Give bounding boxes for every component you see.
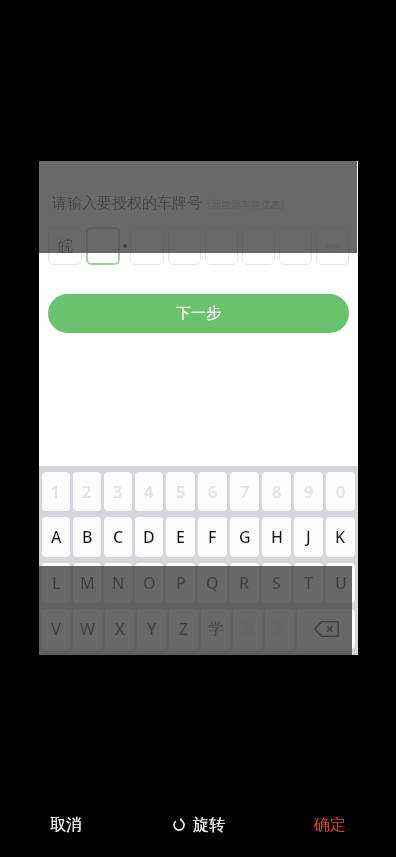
- staticText: D: [143, 526, 155, 548]
- button[interactable]: 皖: [48, 227, 82, 265]
- staticText: 8: [272, 481, 282, 503]
- button[interactable]: [205, 227, 238, 265]
- staticText: R: [239, 572, 250, 594]
- button[interactable]: 取消: [0, 793, 132, 857]
- staticText: 0: [336, 481, 346, 503]
- button[interactable]: O: [135, 563, 163, 603]
- button[interactable]: Z: [169, 609, 198, 649]
- staticText: K: [335, 526, 346, 548]
- staticText: L: [52, 572, 61, 594]
- button[interactable]: N: [104, 563, 132, 603]
- button[interactable]: U: [326, 563, 355, 603]
- staticText: (新能源车牌优惠): [208, 197, 284, 211]
- staticText: 取消: [50, 815, 82, 835]
- button[interactable]: [86, 227, 120, 265]
- button[interactable]: J: [294, 517, 323, 557]
- staticText: Y: [147, 618, 157, 640]
- button[interactable]: [168, 227, 201, 265]
- button[interactable]: 2: [73, 472, 101, 511]
- staticText: J: [306, 526, 311, 548]
- button[interactable]: 8: [262, 472, 291, 511]
- staticText: 6: [208, 481, 218, 503]
- button[interactable]: 学: [201, 609, 230, 649]
- button[interactable]: 7: [230, 472, 259, 511]
- button[interactable]: 5: [166, 472, 195, 511]
- button[interactable]: M: [73, 563, 101, 603]
- staticText: Z: [179, 618, 189, 640]
- button[interactable]: H: [262, 517, 291, 557]
- button[interactable]: 旋转: [132, 793, 264, 857]
- staticText: N: [112, 572, 125, 594]
- staticText: 皖: [58, 237, 73, 256]
- staticText: A: [51, 526, 62, 548]
- staticText: X: [115, 618, 125, 640]
- staticText: W: [80, 618, 96, 640]
- button[interactable]: 1: [42, 472, 70, 511]
- staticText: 7: [240, 481, 250, 503]
- staticText: 5: [176, 481, 186, 503]
- button[interactable]: Y: [137, 609, 166, 649]
- staticText: 学: [208, 619, 224, 639]
- button[interactable]: [279, 227, 312, 265]
- button[interactable]: 4: [135, 472, 163, 511]
- staticText: B: [82, 526, 93, 548]
- staticText: P: [176, 572, 186, 594]
- staticText: V: [51, 618, 61, 640]
- button[interactable]: G: [230, 517, 259, 557]
- staticText: U: [335, 572, 347, 594]
- button[interactable]: K: [326, 517, 355, 557]
- button[interactable]: L: [42, 563, 70, 603]
- button[interactable]: 新能源: [316, 227, 349, 265]
- button[interactable]: W: [73, 609, 102, 649]
- button[interactable]: S: [262, 563, 291, 603]
- staticText: 3: [113, 481, 123, 503]
- button[interactable]: B: [73, 517, 101, 557]
- button[interactable]: 确定: [264, 793, 396, 857]
- button[interactable]: T: [294, 563, 323, 603]
- button[interactable]: Delete: [297, 609, 355, 649]
- staticText: 1: [51, 481, 61, 503]
- button[interactable]: X: [105, 609, 134, 649]
- button[interactable]: R: [230, 563, 259, 603]
- button[interactable]: [242, 227, 275, 265]
- button[interactable]: A: [42, 517, 70, 557]
- staticText: M: [80, 572, 95, 594]
- button[interactable]: V: [42, 609, 70, 649]
- staticText: H: [271, 526, 283, 548]
- staticText: 旋转: [193, 815, 225, 835]
- button[interactable]: Q: [198, 563, 227, 603]
- staticText: Q: [206, 572, 219, 594]
- button[interactable]: P: [166, 563, 195, 603]
- button[interactable]: 6: [198, 472, 227, 511]
- staticText: E: [176, 526, 185, 548]
- staticText: S: [272, 572, 281, 594]
- button[interactable]: C: [104, 517, 132, 557]
- staticText: F: [208, 526, 217, 548]
- button[interactable]: 9: [294, 472, 323, 511]
- button[interactable]: F: [198, 517, 227, 557]
- button[interactable]: 0: [326, 472, 355, 511]
- staticText: T: [304, 572, 313, 594]
- staticText: 9: [304, 481, 314, 503]
- staticText: 请输入要授权的车牌号: [52, 194, 202, 213]
- button[interactable]: 下一步: [48, 294, 349, 333]
- staticText: 下一步: [176, 304, 221, 323]
- staticText: C: [113, 526, 124, 548]
- staticText: 确定: [314, 815, 346, 835]
- staticText: 4: [144, 481, 154, 503]
- staticText: G: [239, 526, 251, 548]
- button[interactable]: [130, 227, 164, 265]
- button[interactable]: E: [166, 517, 195, 557]
- staticText: O: [143, 572, 156, 594]
- button[interactable]: 3: [104, 472, 132, 511]
- staticText: 2: [82, 481, 92, 503]
- button[interactable]: D: [135, 517, 163, 557]
